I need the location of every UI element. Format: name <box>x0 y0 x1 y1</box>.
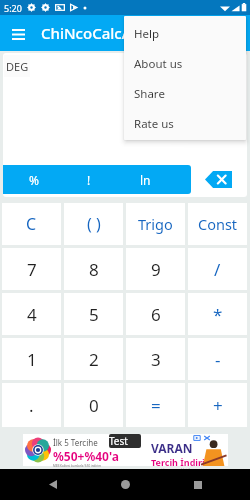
staticText: Help <box>134 26 160 42</box>
button[interactable]: Backspace <box>205 171 232 188</box>
staticText: Const <box>198 214 238 234</box>
button[interactable]: ! <box>61 165 117 194</box>
staticText: Test Ad <box>109 434 141 448</box>
button[interactable]: Share <box>124 79 246 109</box>
button[interactable]: C <box>2 203 61 245</box>
staticText: %50+%40'a <box>53 448 119 464</box>
staticText: VARAN <box>151 440 193 456</box>
staticText: 0 <box>89 394 99 417</box>
button[interactable]: 7 <box>2 248 61 290</box>
staticText: uygun ödeme seçenekleri ile <box>151 468 192 472</box>
staticText: / <box>214 258 221 281</box>
staticText: 6 <box>151 303 161 326</box>
staticText: 8 <box>89 258 99 281</box>
staticText: About us <box>134 56 183 72</box>
staticText: + <box>213 394 223 417</box>
button[interactable]: Trigo <box>126 203 185 245</box>
button[interactable]: % <box>6 165 61 194</box>
staticText: İlk 5 Tercihe <box>53 437 98 448</box>
staticText: ( ) <box>87 213 101 235</box>
staticText: 2 <box>89 348 99 371</box>
staticText: = <box>151 394 161 417</box>
button[interactable]: 5 <box>64 293 123 335</box>
button[interactable]: Const <box>188 203 247 245</box>
staticText: DEG <box>6 59 29 74</box>
button[interactable]: Home <box>105 469 145 500</box>
button[interactable]: / <box>188 248 247 290</box>
button[interactable]: 4 <box>2 293 61 335</box>
button[interactable]: * <box>188 293 247 335</box>
button[interactable]: Back <box>33 469 73 500</box>
staticText: 5 <box>89 303 99 326</box>
button[interactable]: Rate us <box>124 109 246 139</box>
button[interactable]: . <box>2 383 61 427</box>
button[interactable]: DEG <box>4 55 30 77</box>
staticText: 7 <box>27 258 37 281</box>
button[interactable]: = <box>126 383 185 427</box>
staticText: 3 <box>151 348 161 371</box>
staticText: 9 <box>151 258 161 281</box>
button[interactable]: 0 <box>64 383 123 427</box>
button[interactable]: ( ) <box>64 203 123 245</box>
staticText: 5:20 <box>4 2 22 14</box>
button[interactable]: Open navigation drawer <box>0 15 36 51</box>
button[interactable]: 1 <box>2 338 61 380</box>
staticText: 1 <box>27 348 37 371</box>
staticText: Tercih İndirimi <box>151 456 217 468</box>
button[interactable]: 6 <box>126 293 185 335</box>
button[interactable]: 8 <box>64 248 123 290</box>
button[interactable]: About us <box>124 49 246 79</box>
staticText: MEB Kalitesi burslarla %50 indirim <box>53 464 102 468</box>
button[interactable]: - <box>188 338 247 380</box>
button[interactable]: ln <box>117 165 173 194</box>
staticText: C <box>26 213 37 235</box>
staticText: - <box>215 348 221 371</box>
button[interactable]: 9 <box>126 248 185 290</box>
staticText: ln <box>140 172 151 188</box>
button[interactable]: 3 <box>126 338 185 380</box>
button[interactable]: Recent apps <box>178 469 218 500</box>
staticText: * <box>213 303 223 326</box>
staticText: Share <box>134 86 165 102</box>
staticText: Trigo <box>138 214 173 234</box>
staticText: ! <box>87 172 91 188</box>
button[interactable]: + <box>188 383 247 427</box>
staticText: % <box>29 172 39 188</box>
staticText: Rate us <box>134 116 174 132</box>
staticText: 4 <box>27 303 37 326</box>
staticText: ChiNcoCalcA <box>41 23 132 43</box>
staticText: . <box>29 394 34 417</box>
button[interactable]: 2 <box>64 338 123 380</box>
button[interactable]: Help <box>124 19 246 49</box>
